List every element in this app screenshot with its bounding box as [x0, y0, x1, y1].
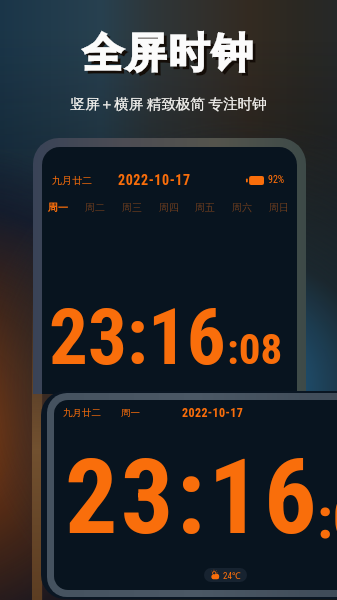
staticText: 23:16: [49, 293, 226, 383]
button[interactable]: 周三: [122, 201, 142, 214]
button[interactable]: 周一: [48, 201, 68, 214]
staticText: 周六: [232, 201, 252, 214]
button[interactable]: 24℃: [204, 568, 247, 582]
staticText: 全屏时钟: [3, 31, 337, 83]
staticText: 九月廿二: [63, 407, 101, 419]
other: Battery 92 percent: [246, 176, 264, 185]
button[interactable]: 周五: [195, 201, 215, 214]
staticText: 周三: [122, 201, 142, 214]
staticText: 九月廿二: [52, 174, 92, 187]
staticText: 竖屏＋横屏 精致极简 专注时钟: [0, 93, 337, 113]
button[interactable]: 周日: [269, 201, 289, 214]
staticText: 23:16: [65, 437, 320, 559]
staticText: 周一: [48, 201, 68, 214]
staticText: 全屏时钟: [0, 28, 337, 80]
staticText: 92%: [268, 174, 285, 186]
staticText: 2022-10-17: [118, 172, 191, 188]
staticText: 24℃: [223, 569, 241, 581]
button[interactable]: 周二: [85, 201, 105, 214]
button[interactable]: 周四: [159, 201, 179, 214]
staticText: :08: [227, 324, 283, 374]
staticText: 周四: [159, 201, 179, 214]
staticText: 周一: [121, 407, 140, 419]
button[interactable]: 周六: [232, 201, 252, 214]
staticText: 周五: [195, 201, 215, 214]
staticText: 周二: [85, 201, 105, 214]
staticText: 2022-10-17: [182, 406, 244, 420]
staticText: 周日: [269, 201, 289, 214]
staticText: :08: [317, 484, 337, 552]
